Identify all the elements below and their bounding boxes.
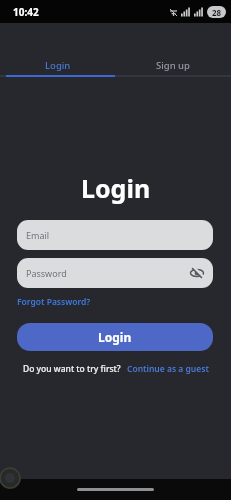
- staticText: Continue as a guest: [127, 363, 209, 375]
- button[interactable]: Login: [17, 323, 213, 351]
- button[interactable]: Login: [0, 53, 115, 77]
- button[interactable]: Continue as a guest: [127, 363, 209, 375]
- button[interactable]: Email: [17, 220, 213, 250]
- button[interactable]: Forgot Password?: [17, 296, 91, 308]
- staticText: Login: [45, 59, 71, 72]
- staticText: Password: [26, 267, 67, 279]
- button[interactable]: Sign up: [115, 53, 231, 77]
- staticText: Login: [98, 329, 132, 345]
- button[interactable]: Password: [17, 258, 213, 288]
- staticText: Sign up: [156, 59, 190, 72]
- staticText: Login: [81, 171, 151, 205]
- staticText: 10:42: [13, 5, 39, 19]
- staticText: Do you want to try first?: [23, 363, 121, 375]
- staticText: Forgot Password?: [17, 296, 91, 308]
- staticText: Email: [26, 229, 50, 241]
- staticText: 28: [212, 7, 222, 18]
